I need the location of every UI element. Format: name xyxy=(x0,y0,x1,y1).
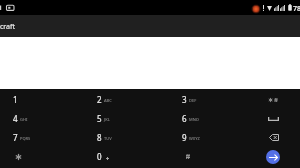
staticText: 9 xyxy=(182,132,187,143)
staticText: 1 xyxy=(13,94,18,105)
staticText: DEF xyxy=(189,98,197,103)
staticText: TUV xyxy=(104,136,112,141)
button[interactable]: 4 xyxy=(0,109,84,128)
staticText: 2 xyxy=(97,94,102,105)
button[interactable]: 8 xyxy=(84,128,168,147)
staticText: PQRS xyxy=(20,136,31,141)
staticText: JKL xyxy=(104,117,110,122)
staticText: 78 xyxy=(293,4,300,14)
button[interactable]: Space xyxy=(248,109,299,128)
button[interactable] xyxy=(169,147,253,166)
button[interactable]: craft xyxy=(0,15,300,37)
staticText: 8 xyxy=(97,132,102,143)
staticText: 3 xyxy=(182,94,187,105)
staticText: 4 xyxy=(13,113,18,124)
staticText: 7 xyxy=(13,132,18,143)
staticText: 5 xyxy=(97,113,102,124)
button[interactable]: 3 xyxy=(169,90,253,109)
button[interactable]: 0 xyxy=(84,147,168,166)
button[interactable]: 6 xyxy=(169,109,253,128)
button[interactable]: 1 xyxy=(0,90,84,109)
button[interactable]: 7 xyxy=(0,128,84,147)
staticText: 0 xyxy=(97,151,102,162)
staticText: GHI xyxy=(20,117,28,122)
button[interactable]: 2 xyxy=(84,90,168,109)
button[interactable]: Enter xyxy=(266,150,280,164)
button[interactable]: Backspace xyxy=(248,128,299,147)
button[interactable] xyxy=(0,147,84,166)
button[interactable]: Symbols xyxy=(248,90,299,109)
staticText: MNO xyxy=(189,117,199,122)
button[interactable]: 9 xyxy=(169,128,253,147)
staticText: ABC xyxy=(104,98,112,103)
staticText: 6 xyxy=(182,113,187,124)
staticText: WXYZ xyxy=(189,136,200,141)
button[interactable]: 5 xyxy=(84,109,168,128)
staticText: craft xyxy=(0,22,15,32)
